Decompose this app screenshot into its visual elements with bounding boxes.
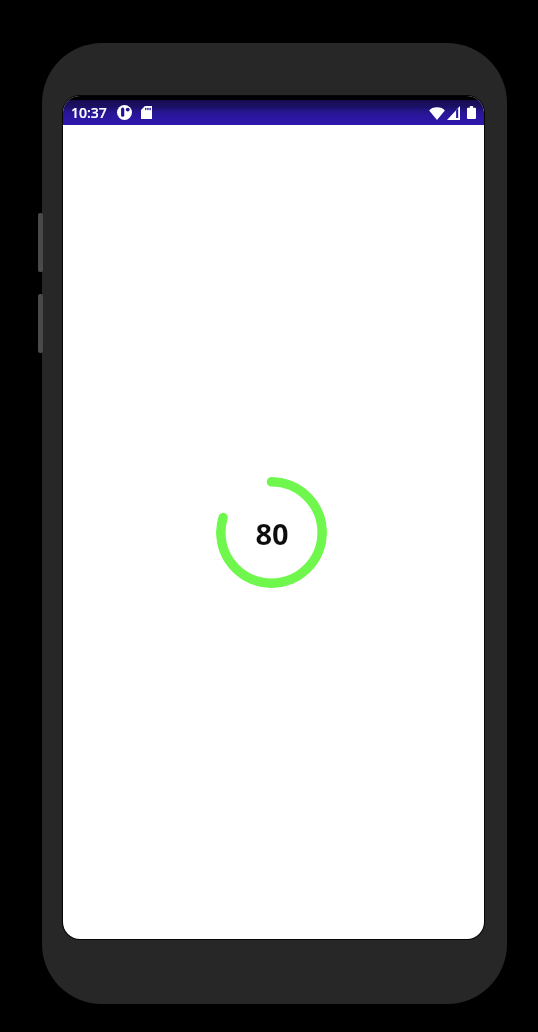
staticText: 10:37 bbox=[71, 103, 107, 122]
staticText: 80 bbox=[255, 514, 289, 553]
button[interactable]: Progress 80 percent bbox=[216, 477, 327, 588]
